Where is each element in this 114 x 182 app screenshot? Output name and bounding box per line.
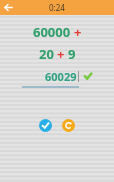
staticText: 20 bbox=[39, 45, 54, 63]
button[interactable]: New question bbox=[62, 119, 75, 132]
button[interactable]: 60029 bbox=[22, 69, 79, 88]
staticText: 60029 bbox=[45, 69, 77, 84]
staticText: + bbox=[57, 45, 65, 63]
staticText: 60000 bbox=[33, 23, 71, 41]
staticText: 0:24 bbox=[49, 2, 65, 13]
staticText: 9 bbox=[68, 45, 76, 63]
button[interactable]: Back bbox=[0, 0, 17, 15]
staticText: + bbox=[74, 23, 82, 41]
button[interactable]: Check answer bbox=[39, 119, 52, 132]
